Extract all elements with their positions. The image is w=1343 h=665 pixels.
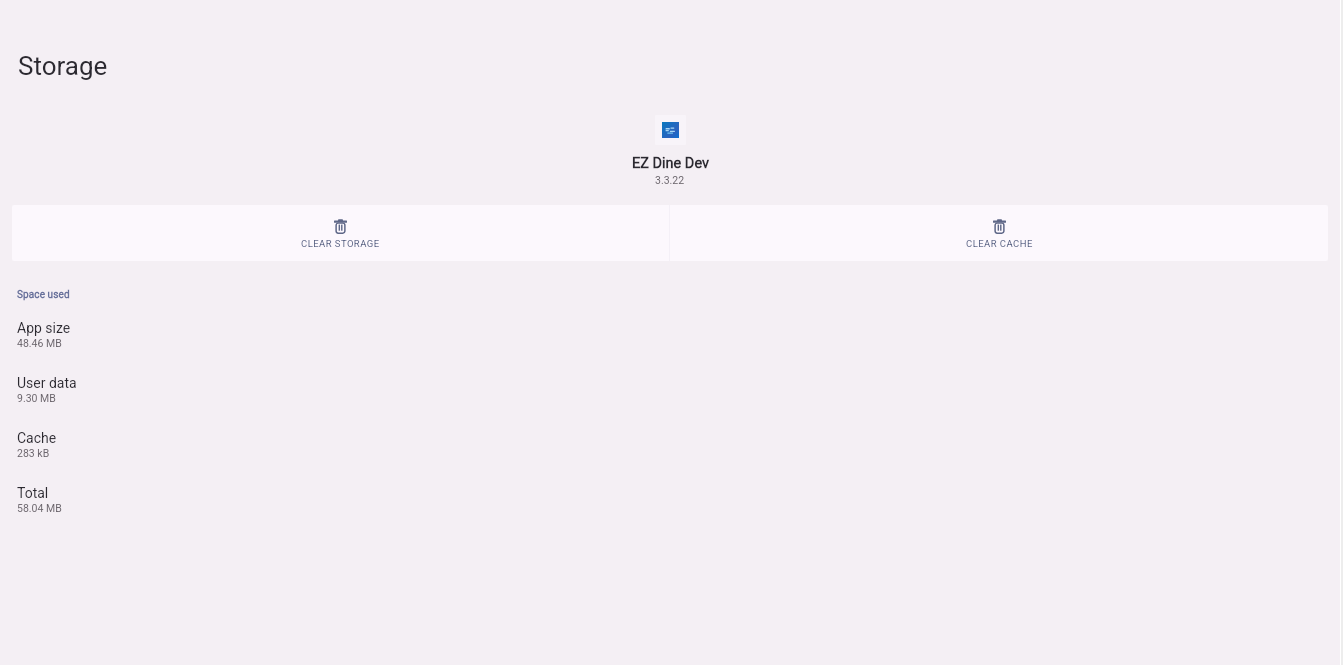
staticText: 9.30 MB (17, 392, 56, 404)
staticText: 283 kB (17, 447, 50, 459)
staticText: CLEAR STORAGE (301, 238, 380, 249)
button[interactable]: Total (0, 482, 1340, 520)
staticText: EZ Dine Dev (632, 155, 709, 172)
button[interactable]: App size (0, 317, 1340, 355)
staticText: 58.04 MB (17, 502, 62, 514)
button[interactable]: CLEAR CACHE (670, 205, 1328, 261)
staticText: 3.3.22 (655, 174, 685, 186)
staticText: App size (17, 320, 71, 336)
button[interactable]: User data (0, 372, 1340, 410)
staticText: Storage (18, 51, 108, 81)
staticText: Space used (17, 289, 70, 301)
staticText: Cache (17, 430, 57, 446)
button[interactable]: CLEAR STORAGE (12, 205, 669, 261)
staticText: User data (17, 375, 77, 391)
staticText: 48.46 MB (17, 337, 62, 349)
staticText: Total (17, 485, 49, 501)
button[interactable]: Cache (0, 427, 1340, 465)
staticText: CLEAR CACHE (966, 238, 1033, 249)
